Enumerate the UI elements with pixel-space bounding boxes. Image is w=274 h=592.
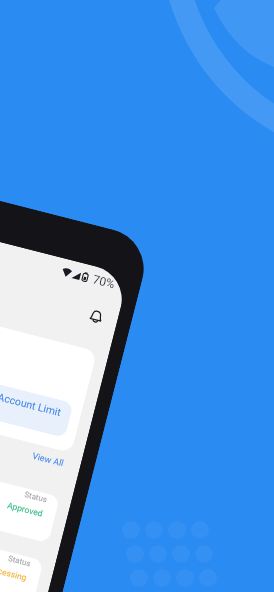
button[interactable]: Status (0, 433, 60, 543)
button[interactable]: Status (0, 561, 28, 592)
staticText: 70% (91, 272, 117, 291)
button[interactable]: Notifications (81, 302, 110, 331)
staticText: Processing (0, 563, 28, 583)
staticText: Approved (6, 500, 44, 519)
staticText: Account Limit (0, 390, 62, 418)
button[interactable]: View All (31, 451, 65, 469)
staticText: Status (23, 490, 48, 504)
staticText: Status (7, 554, 32, 568)
button[interactable]: Available Balance (0, 287, 97, 453)
button[interactable]: Account Limit (0, 344, 74, 438)
button[interactable]: Status (0, 497, 44, 592)
staticText: View All (31, 451, 65, 469)
